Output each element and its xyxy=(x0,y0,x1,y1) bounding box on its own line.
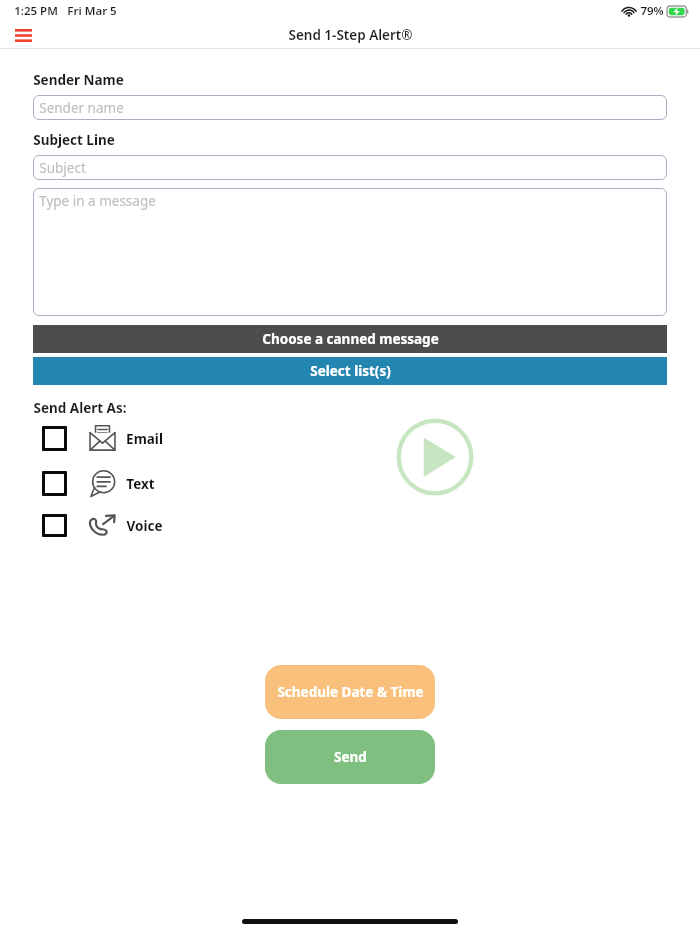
staticText: 79% xyxy=(640,3,664,19)
staticText: Send xyxy=(334,748,367,766)
staticText: Email xyxy=(126,430,163,448)
button[interactable]: Schedule Date & Time xyxy=(265,665,435,719)
staticText: Sender Name xyxy=(33,71,124,89)
button[interactable]: Choose a canned message xyxy=(33,325,667,353)
staticText: Select list(s) xyxy=(310,362,391,380)
staticText: Send 1-Step Alert® xyxy=(288,26,413,44)
staticText: Fri Mar 5 xyxy=(67,3,117,19)
button[interactable]: Send xyxy=(265,730,435,784)
staticText: Type in a message xyxy=(39,192,156,210)
staticText: Sender name xyxy=(39,99,124,117)
staticText: 1:25 PM xyxy=(14,3,58,19)
button[interactable]: Subject xyxy=(33,155,667,180)
staticText: Subject Line xyxy=(33,131,115,149)
button[interactable]: Select list(s) xyxy=(33,357,667,385)
staticText: Schedule Date & Time xyxy=(277,683,424,701)
button[interactable]: Sender name xyxy=(33,95,667,120)
staticText: Choose a canned message xyxy=(262,330,439,348)
staticText: Subject xyxy=(39,159,86,177)
button[interactable]: Type in a message xyxy=(33,188,667,316)
button[interactable]: Email xyxy=(42,424,163,453)
button[interactable]: Voice xyxy=(42,514,163,537)
staticText: Text xyxy=(126,475,155,493)
staticText: Send Alert As: xyxy=(33,399,127,417)
button[interactable]: Menu xyxy=(8,22,38,48)
button[interactable]: Play xyxy=(395,417,475,497)
staticText: Voice xyxy=(126,517,163,535)
button[interactable]: Text xyxy=(42,469,155,498)
